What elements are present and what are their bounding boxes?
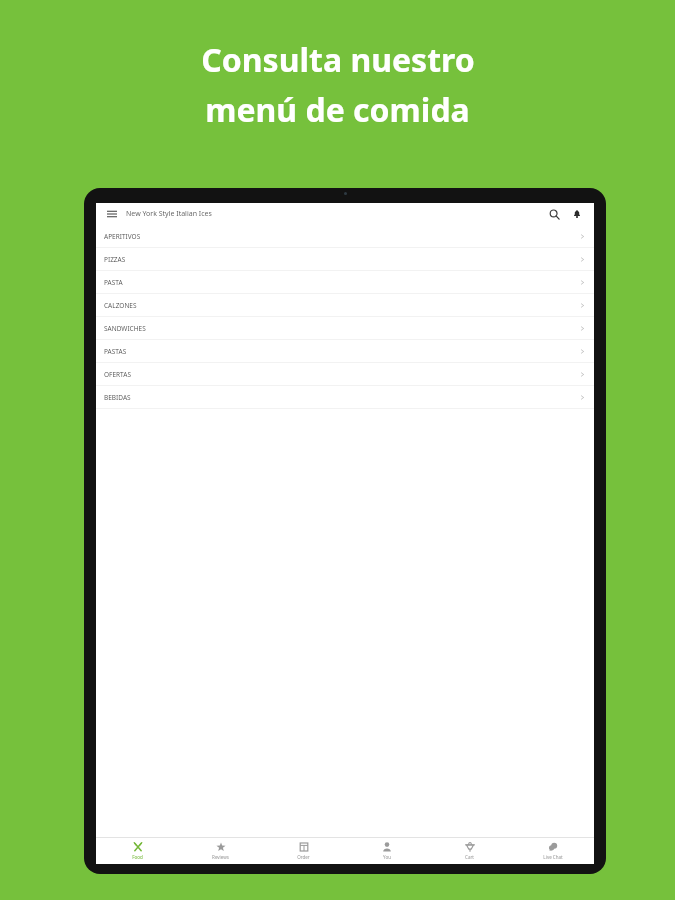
button[interactable]: Order: [262, 838, 345, 864]
button[interactable]: Notifications: [568, 205, 586, 223]
staticText: Food: [132, 854, 143, 860]
button[interactable]: BEBIDAS: [96, 386, 594, 409]
staticText: SANDWICHES: [104, 324, 146, 333]
button[interactable]: APERITIVOS: [96, 225, 594, 248]
staticText: PASTAS: [104, 347, 127, 356]
staticText: PASTA: [104, 278, 123, 287]
button[interactable]: PASTAS: [96, 340, 594, 363]
staticText: APERITIVOS: [104, 232, 141, 241]
staticText: Live Chat: [543, 854, 563, 860]
button[interactable]: OFERTAS: [96, 363, 594, 386]
staticText: Order: [297, 854, 310, 860]
button[interactable]: Reviews: [179, 838, 262, 864]
button[interactable]: Search: [545, 205, 563, 223]
staticText: Reviews: [212, 854, 229, 860]
button[interactable]: CALZONES: [96, 294, 594, 317]
staticText: OFERTAS: [104, 370, 131, 379]
button[interactable]: Cart: [428, 838, 511, 864]
staticText: menú de comida: [205, 88, 470, 132]
staticText: BEBIDAS: [104, 393, 131, 402]
button[interactable]: You: [345, 838, 428, 864]
staticText: Consulta nuestro: [201, 38, 475, 82]
button[interactable]: Menu: [104, 206, 120, 222]
button[interactable]: PASTA: [96, 271, 594, 294]
button[interactable]: Live Chat: [511, 838, 594, 864]
staticText: You: [383, 854, 391, 860]
button[interactable]: PIZZAS: [96, 248, 594, 271]
button[interactable]: SANDWICHES: [96, 317, 594, 340]
button[interactable]: Food: [96, 838, 179, 864]
staticText: PIZZAS: [104, 255, 126, 264]
staticText: New York Style Italian Ices: [126, 209, 212, 219]
staticText: Cart: [465, 854, 474, 860]
staticText: CALZONES: [104, 301, 137, 310]
